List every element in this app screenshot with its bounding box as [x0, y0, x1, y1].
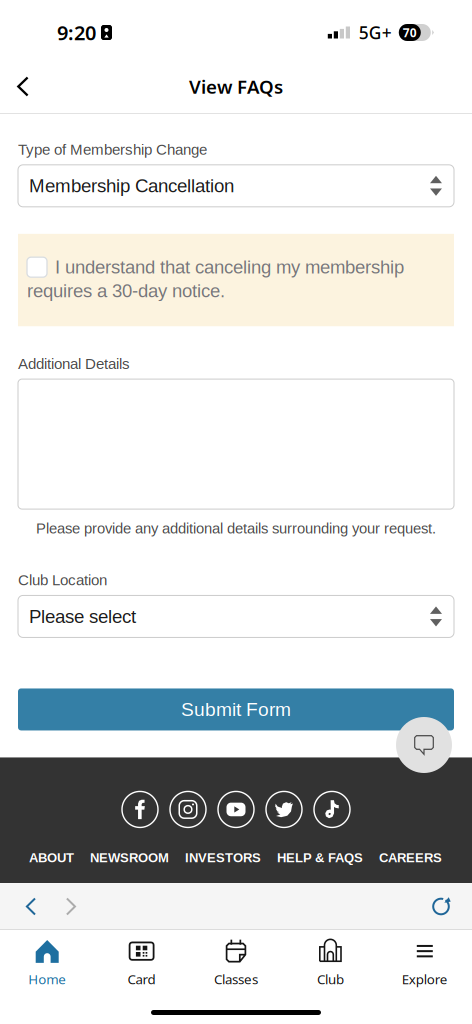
button[interactable]: Back [0, 63, 46, 109]
staticText: Classes [214, 970, 258, 988]
staticText: Club [317, 970, 344, 988]
button[interactable]: Club [283, 929, 378, 985]
button[interactable]: NEWSROOM [90, 850, 169, 865]
staticText: CAREERS [379, 850, 442, 865]
button[interactable]: Please select [18, 595, 454, 637]
staticText: Explore [402, 970, 448, 988]
button[interactable]: Membership Cancellation [18, 165, 454, 207]
button[interactable]: I understand that canceling my membershi… [27, 257, 47, 277]
button[interactable]: Submit Form [18, 688, 454, 730]
staticText: Submit Form [181, 699, 291, 720]
staticText: 70 [403, 24, 417, 40]
button[interactable]: Chat [396, 717, 452, 773]
button[interactable]: INVESTORS [185, 850, 261, 865]
staticText: Please provide any additional details su… [36, 520, 436, 537]
button[interactable]: CAREERS [379, 850, 442, 865]
button[interactable]: YouTube [212, 790, 260, 828]
button[interactable]: Twitter [260, 790, 308, 828]
staticText: I understand that canceling my membershi… [55, 257, 404, 277]
button[interactable]: Instagram [164, 790, 212, 828]
staticText: Additional Details [18, 355, 130, 372]
staticText: Home [28, 970, 66, 988]
button[interactable]: Explore [378, 929, 472, 985]
button[interactable]: Back [12, 886, 50, 926]
button[interactable]: HELP & FAQS [277, 850, 363, 865]
button[interactable]: Forward [52, 886, 90, 926]
button[interactable]: Home [0, 929, 94, 985]
staticText: Type of Membership Change [18, 141, 207, 158]
staticText: Club Location [18, 572, 107, 588]
staticText: Card [128, 970, 156, 988]
staticText: Please select [29, 606, 136, 627]
staticText: Membership Cancellation [29, 175, 234, 196]
staticText: 9:20 [57, 19, 96, 46]
button[interactable]: Classes [189, 929, 283, 985]
staticText: View FAQs [189, 74, 283, 99]
staticText: INVESTORS [185, 850, 261, 865]
button[interactable]: ABOUT [29, 850, 74, 865]
staticText: NEWSROOM [90, 850, 169, 865]
staticText: requires a 30-day notice. [27, 280, 225, 301]
button[interactable]: Card [94, 929, 189, 985]
staticText: 5G+ [359, 21, 392, 44]
button[interactable]: TikTok [308, 790, 356, 828]
button[interactable]: Reload [422, 886, 460, 926]
button[interactable]: Facebook [116, 790, 164, 828]
staticText: HELP & FAQS [277, 850, 363, 865]
staticText: ABOUT [29, 850, 74, 865]
